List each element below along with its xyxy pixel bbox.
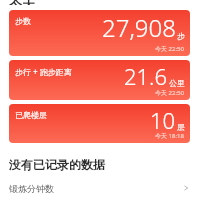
staticText: 已爬楼层 — [15, 110, 47, 120]
button[interactable]: 步行 + 跑步距离 — [9, 60, 190, 100]
staticText: 27,908 — [102, 11, 176, 44]
staticText: 今天 — [9, 0, 35, 5]
staticText: 锻炼分钟数 — [9, 183, 54, 194]
staticText: 公里 — [169, 78, 185, 88]
staticText: 今天 22:50 — [155, 89, 184, 97]
staticText: 今天 18:18 — [155, 132, 184, 140]
button[interactable]: 锻炼分钟数 — [9, 180, 190, 196]
staticText: 今天 22:50 — [155, 45, 184, 53]
staticText: 步 — [177, 31, 185, 41]
button[interactable]: 已爬楼层 — [9, 104, 190, 143]
staticText: 10 — [150, 105, 176, 135]
staticText: 步数 — [15, 16, 31, 26]
button[interactable]: 步数 — [9, 10, 190, 56]
staticText: 没有已记录的数据 — [9, 157, 105, 172]
other: Open 锻炼分钟数 — [182, 184, 190, 192]
staticText: 21.6 — [124, 61, 168, 91]
staticText: 层 — [177, 122, 185, 132]
staticText: 步行 + 跑步距离 — [15, 66, 72, 77]
